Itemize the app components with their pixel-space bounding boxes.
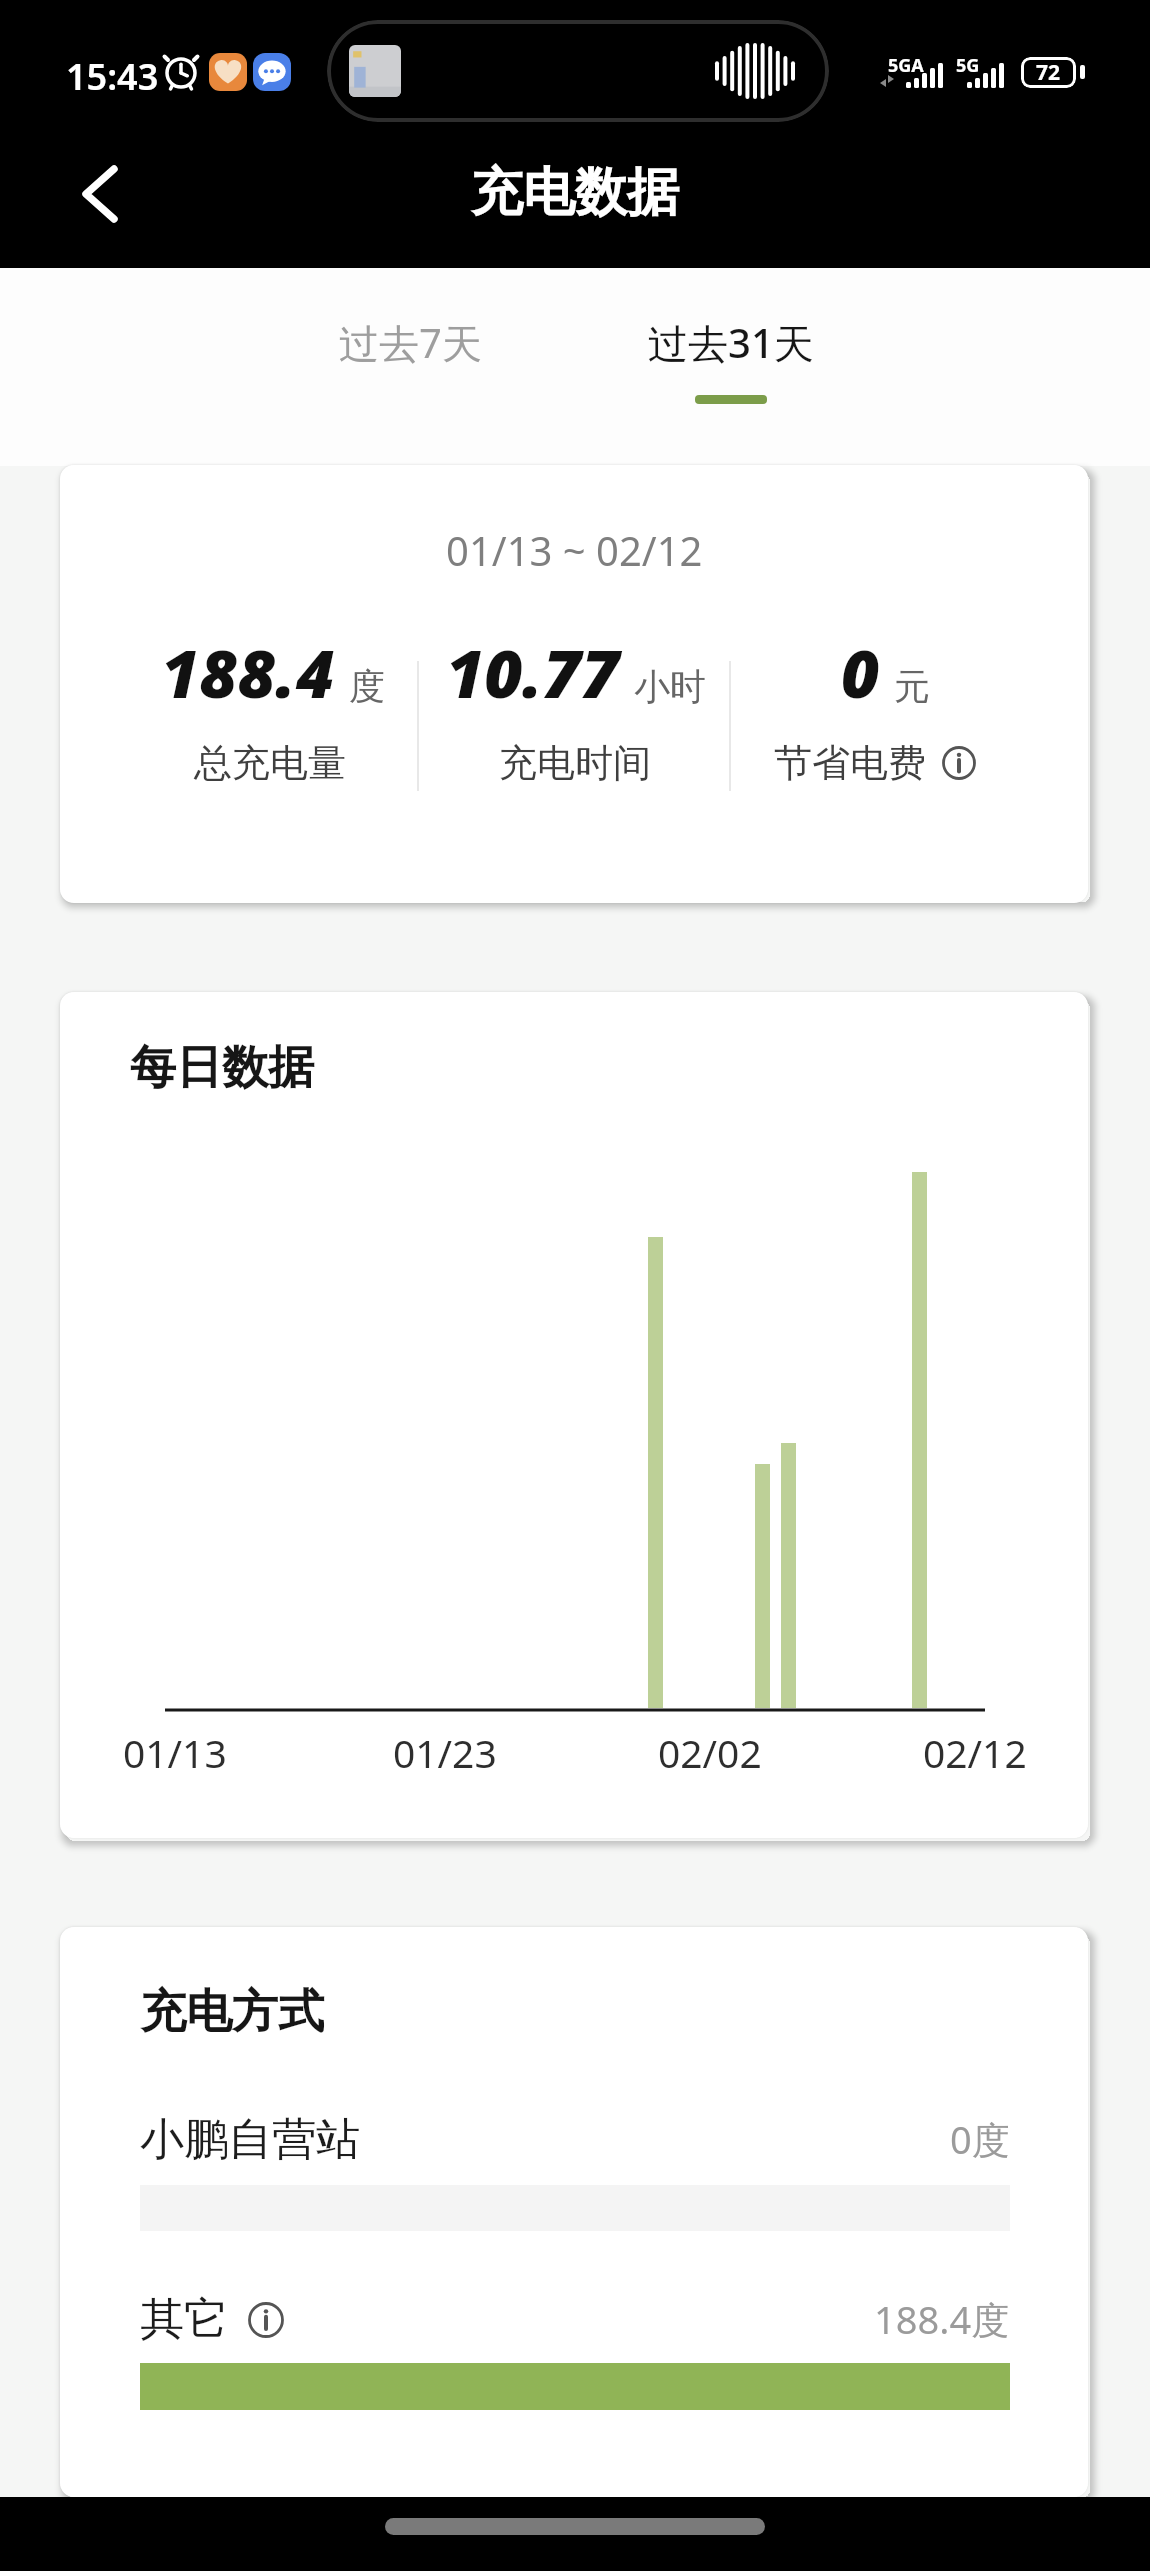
staticText: 02/02 [658, 1726, 762, 1778]
staticText: 72 [1036, 58, 1061, 87]
staticText: 过去7天 [339, 315, 482, 370]
button[interactable] [385, 2518, 765, 2535]
button[interactable]: 小鹏自营站 [140, 2109, 1010, 2169]
staticText: 总充电量 [194, 739, 346, 787]
staticText: 充电时间 [499, 739, 651, 787]
button[interactable]: 过去7天 [300, 302, 520, 382]
staticText: 01/13 [123, 1726, 227, 1778]
staticText: 15:43 [66, 52, 159, 101]
button[interactable]: 其它 [140, 2289, 1010, 2349]
staticText: 过去31天 [648, 315, 814, 370]
button[interactable] [60, 152, 140, 236]
staticText: 188.4 [161, 627, 335, 717]
staticText: 每日数据 [130, 1039, 314, 1097]
staticText: 小时 [634, 664, 706, 709]
staticText: 5G [956, 53, 980, 78]
staticText: 10.77 [446, 627, 620, 717]
staticText: 其它 [140, 2292, 228, 2347]
staticText: 01/13 ~ 02/12 [446, 523, 703, 573]
staticText: 0度 [950, 2113, 1010, 2165]
staticText: 充电方式 [140, 1983, 324, 2041]
staticText: 充电数据 [471, 160, 679, 226]
staticText: 02/12 [923, 1726, 1027, 1778]
staticText: 小鹏自营站 [140, 2112, 360, 2167]
staticText: 188.4度 [874, 2293, 1010, 2345]
staticText: 0 [841, 627, 880, 717]
staticText: 节省电费 [774, 739, 926, 787]
button[interactable]: 过去31天 [621, 302, 841, 382]
staticText: 5GA [888, 53, 924, 78]
staticText: 01/23 [393, 1726, 497, 1778]
button[interactable]: 节省电费 [725, 737, 1025, 789]
staticText: 元 [894, 664, 930, 709]
staticText: 度 [349, 664, 385, 709]
